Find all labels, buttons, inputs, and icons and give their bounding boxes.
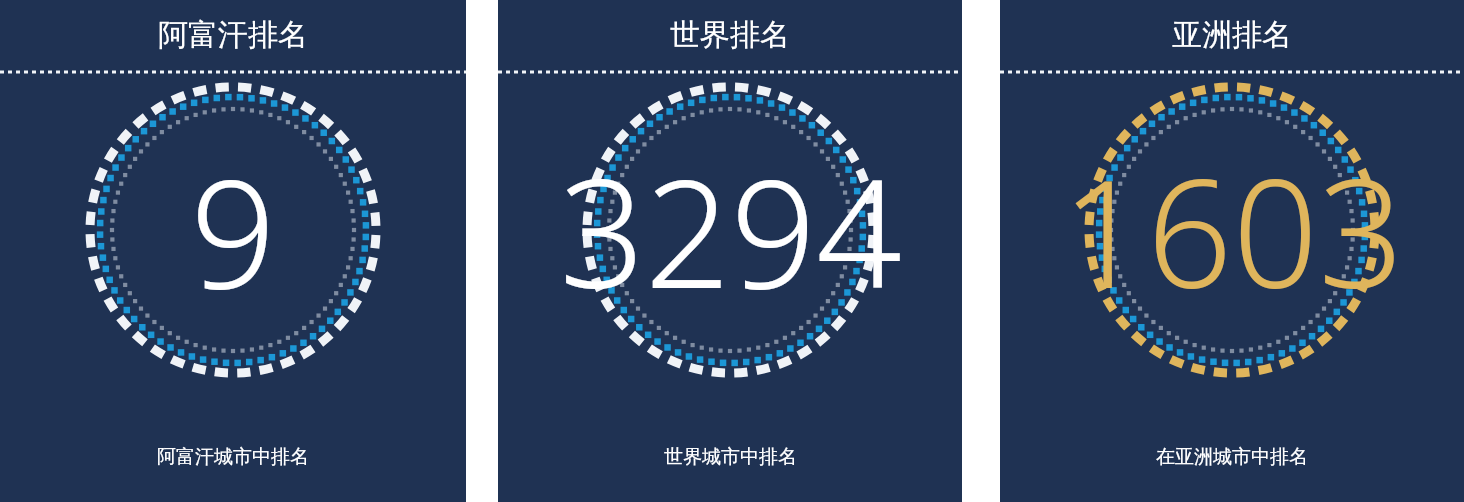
button[interactable]: 亚洲排名 <box>1000 0 1464 502</box>
staticText: 世界城市中排名 <box>664 445 797 469</box>
button[interactable]: 阿富汗排名 <box>0 0 466 502</box>
staticText: 亚洲排名 <box>1172 16 1292 54</box>
staticText: 1603 <box>1061 128 1404 332</box>
staticText: 阿富汗城市中排名 <box>157 445 309 469</box>
staticText: 9 <box>190 128 276 332</box>
staticText: 3294 <box>559 128 902 332</box>
staticText: 世界排名 <box>670 16 790 54</box>
button[interactable]: 世界排名 <box>498 0 962 502</box>
staticText: 在亚洲城市中排名 <box>1156 445 1308 469</box>
staticText: 阿富汗排名 <box>158 16 308 54</box>
